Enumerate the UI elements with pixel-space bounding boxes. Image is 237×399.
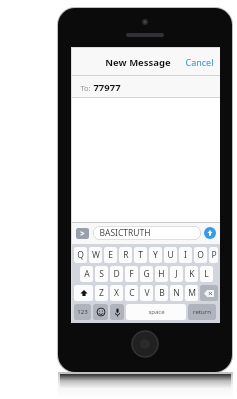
staticText: F xyxy=(129,268,134,280)
staticText: BASICTRUTH xyxy=(99,227,151,239)
staticText: E xyxy=(108,249,113,261)
staticText: space xyxy=(148,308,165,316)
button[interactable]: Cancel xyxy=(182,52,217,72)
button[interactable]: W xyxy=(89,247,102,263)
button[interactable]: To: xyxy=(72,76,220,98)
staticText: Q xyxy=(77,249,84,261)
staticText: 123 xyxy=(77,308,88,316)
button[interactable]: D xyxy=(110,266,123,282)
staticText: New Message xyxy=(105,56,171,69)
button[interactable]: More options xyxy=(76,228,89,239)
staticText: C xyxy=(129,287,135,299)
staticText: P xyxy=(211,249,217,261)
button[interactable]: A xyxy=(80,266,93,282)
staticText: M xyxy=(188,287,196,299)
staticText: W xyxy=(92,249,100,261)
staticText: T xyxy=(138,249,143,261)
staticText: D xyxy=(113,268,120,280)
button[interactable]: E xyxy=(104,247,117,263)
button[interactable]: X xyxy=(110,285,123,301)
button[interactable]: Shift xyxy=(74,285,93,301)
button[interactable]: O xyxy=(194,247,207,263)
button[interactable]: BASICTRUTH xyxy=(93,226,201,240)
button[interactable]: Send xyxy=(204,227,216,239)
button[interactable]: return xyxy=(188,304,216,320)
staticText: G xyxy=(143,268,150,280)
button[interactable]: Q xyxy=(74,247,87,263)
button[interactable]: T xyxy=(134,247,147,263)
button[interactable]: 123 xyxy=(74,304,91,320)
button[interactable]: L xyxy=(200,266,213,282)
staticText: J xyxy=(175,268,178,280)
button[interactable]: U xyxy=(164,247,177,263)
button[interactable]: K xyxy=(185,266,198,282)
button[interactable]: Z xyxy=(95,285,108,301)
button[interactable]: J xyxy=(170,266,183,282)
button[interactable]: Dictation xyxy=(110,304,124,320)
staticText: S xyxy=(99,268,104,280)
button[interactable]: F xyxy=(125,266,138,282)
button[interactable]: Backspace xyxy=(200,285,218,301)
staticText: I xyxy=(184,249,187,261)
button[interactable]: S xyxy=(95,266,108,282)
button[interactable]: Home xyxy=(131,330,159,358)
staticText: return xyxy=(193,308,211,316)
button[interactable]: I xyxy=(179,247,192,263)
staticText: U xyxy=(167,249,174,261)
button[interactable]: M xyxy=(185,285,198,301)
button[interactable]: G xyxy=(140,266,153,282)
staticText: R xyxy=(123,249,129,261)
staticText: H xyxy=(158,268,165,280)
staticText: Z xyxy=(99,287,104,299)
staticText: K xyxy=(189,268,195,280)
button[interactable]: C xyxy=(125,285,138,301)
staticText: To: xyxy=(79,83,92,93)
button[interactable]: N xyxy=(170,285,183,301)
staticText: V xyxy=(144,287,150,299)
button[interactable]: P xyxy=(209,247,218,263)
staticText: L xyxy=(204,268,209,280)
button[interactable]: R xyxy=(119,247,132,263)
staticText: N xyxy=(173,287,180,299)
button[interactable]: space xyxy=(126,304,186,320)
staticText: Cancel xyxy=(185,56,214,68)
button[interactable]: Emoji xyxy=(93,304,108,320)
staticText: Y xyxy=(153,249,158,261)
staticText: A xyxy=(84,268,90,280)
button[interactable]: Y xyxy=(149,247,162,263)
staticText: > xyxy=(80,229,85,239)
button[interactable]: V xyxy=(140,285,153,301)
staticText: X xyxy=(114,287,119,299)
staticText: 77977 xyxy=(93,81,121,94)
button[interactable]: H xyxy=(155,266,168,282)
staticText: O xyxy=(197,249,204,261)
staticText: B xyxy=(159,287,165,299)
button[interactable]: B xyxy=(155,285,168,301)
